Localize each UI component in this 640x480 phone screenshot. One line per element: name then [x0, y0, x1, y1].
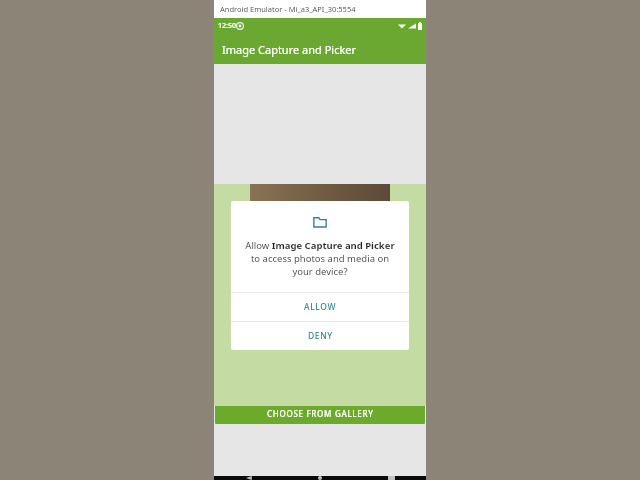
staticText: ALLOW	[304, 301, 337, 313]
staticText: Allow Image Capture and Picker to access…	[245, 239, 395, 278]
button[interactable]: DENY	[231, 322, 409, 350]
staticText: Image Capture and Picker	[222, 42, 357, 57]
staticText: Android Emulator - Mi_a3_API_30:5554	[220, 4, 356, 14]
button[interactable]: CHOOSE FROM GALLERY	[215, 403, 425, 424]
button[interactable]: ALLOW	[231, 293, 409, 321]
staticText: DENY	[308, 330, 333, 342]
button[interactable]: Recent apps	[381, 476, 401, 480]
button[interactable]: Back	[239, 476, 259, 480]
staticText: CHOOSE FROM GALLERY	[267, 408, 374, 419]
button[interactable]: Home	[310, 476, 330, 480]
staticText: 12:50	[218, 21, 236, 31]
